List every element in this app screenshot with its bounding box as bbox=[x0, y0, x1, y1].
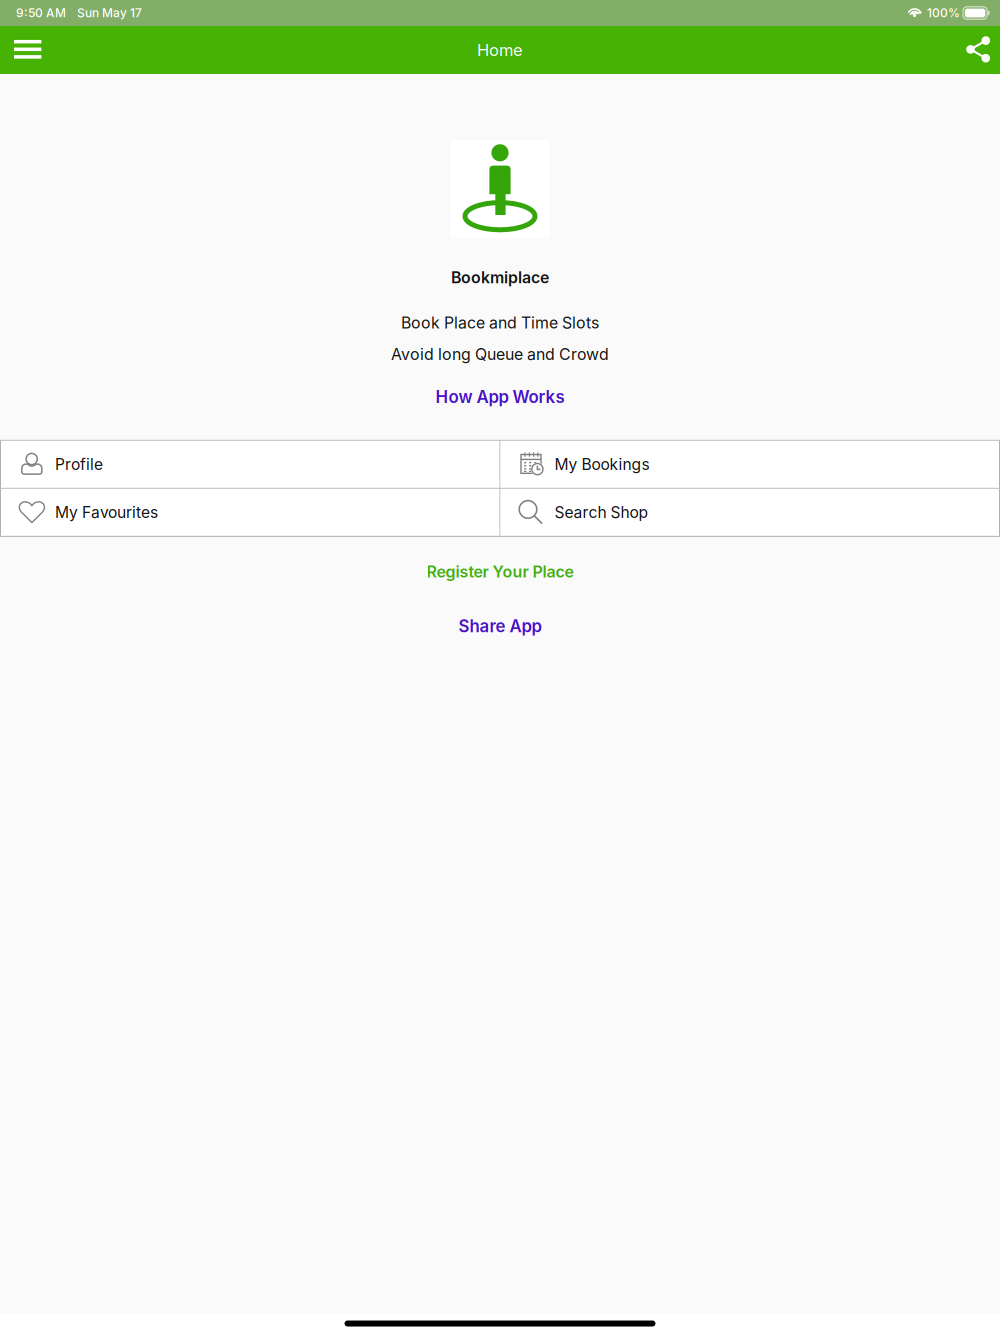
staticText: 100% bbox=[927, 6, 960, 20]
button[interactable]: My Bookings bbox=[500, 441, 999, 488]
staticText: Avoid long Queue and Crowd bbox=[391, 345, 609, 364]
staticText: Profile bbox=[55, 455, 103, 474]
staticText: Home bbox=[477, 40, 523, 60]
staticText: 9:50 AM bbox=[16, 6, 66, 20]
staticText: My Bookings bbox=[554, 455, 649, 474]
staticText: Book Place and Time Slots bbox=[401, 313, 599, 332]
staticText: Sun May 17 bbox=[77, 6, 142, 20]
button[interactable]: Register Your Place bbox=[416, 557, 583, 586]
button[interactable]: How App Works bbox=[425, 382, 574, 412]
staticText: Search Shop bbox=[554, 503, 648, 522]
staticText: Register Your Place bbox=[426, 562, 573, 581]
staticText: My Favourites bbox=[55, 503, 158, 522]
staticText: How App Works bbox=[435, 387, 564, 407]
button[interactable]: Profile bbox=[1, 441, 499, 488]
staticText: Bookmiplace bbox=[451, 268, 549, 287]
button[interactable]: Menu bbox=[0, 26, 55, 74]
staticText: Share App bbox=[458, 616, 541, 636]
button[interactable]: Search Shop bbox=[500, 489, 999, 536]
button[interactable]: Share bbox=[942, 26, 1000, 74]
button[interactable]: Share App bbox=[448, 611, 551, 641]
button[interactable]: My Favourites bbox=[1, 489, 499, 536]
